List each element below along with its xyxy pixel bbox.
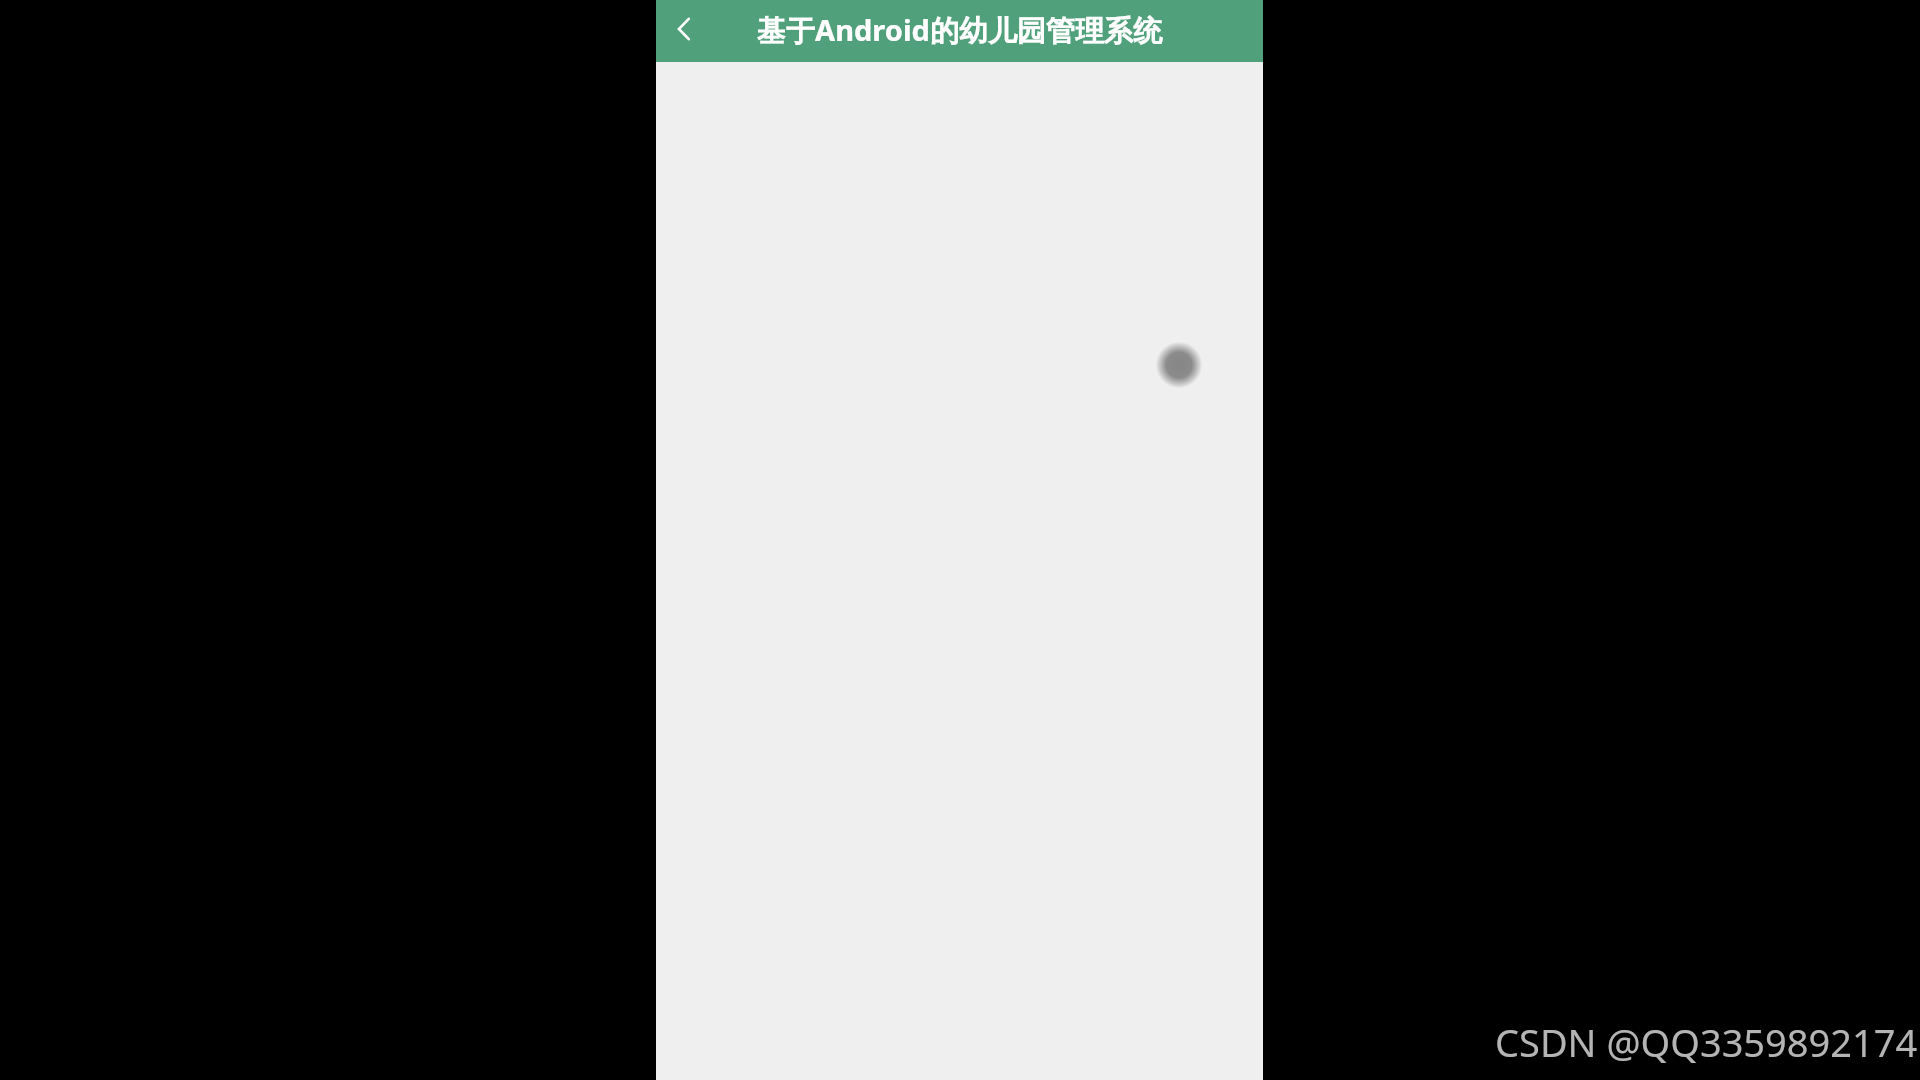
button[interactable]: Back: [658, 3, 710, 55]
staticText: 基于Android的幼儿园管理系统: [757, 10, 1162, 50]
staticText: CSDN @QQ3359892174: [1495, 1016, 1918, 1068]
